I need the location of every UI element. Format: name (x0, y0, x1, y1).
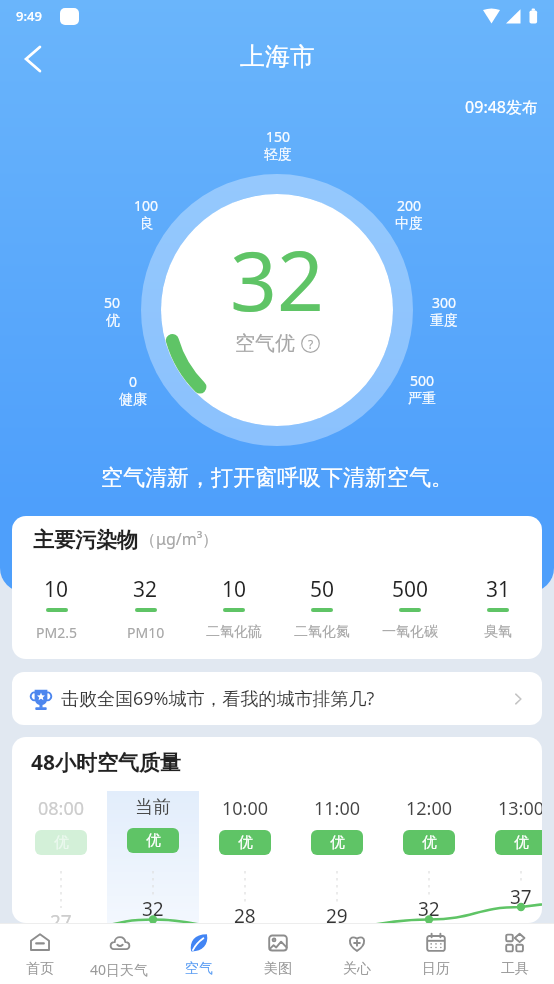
button[interactable]: 空气 (159, 924, 238, 984)
staticText: PM2.5 (36, 623, 77, 642)
staticText: 臭氧 (484, 623, 512, 641)
staticText: 08:00 (38, 796, 85, 821)
staticText: 10 (222, 575, 247, 604)
staticText: 一氧化碳 (382, 623, 438, 641)
staticText: 空气优 (235, 331, 295, 356)
staticText: 09:48发布 (0, 96, 538, 118)
staticText: 50 (104, 293, 121, 312)
staticText: 二氧化硫 (206, 623, 262, 641)
button[interactable]: 关心 (317, 924, 396, 984)
staticText: 500 (392, 575, 429, 604)
staticText: 50 (310, 575, 335, 604)
staticText: 主要污染物 (33, 527, 138, 553)
button[interactable]: 首页 (0, 924, 80, 984)
staticText: 优 (54, 833, 69, 852)
staticText: 500 (410, 371, 435, 390)
button[interactable]: 击败全国69%城市，看我的城市排第几? (12, 672, 542, 725)
staticText: 32 (230, 223, 324, 335)
staticText: （μg/m³） (140, 528, 219, 550)
staticText: 空气清新，打开窗呼吸下清新空气。 (0, 464, 554, 492)
staticText: PM10 (127, 623, 165, 642)
staticText: 31 (486, 575, 511, 604)
staticText: 优 (238, 833, 253, 852)
staticText: 空气 (185, 960, 213, 978)
staticText: 27 (50, 909, 72, 923)
staticText: 28 (234, 903, 256, 923)
staticText: 10:00 (222, 796, 269, 821)
staticText: 健康 (119, 391, 147, 406)
staticText: 中度 (395, 215, 423, 230)
staticText: 优 (106, 312, 120, 327)
staticText: 日历 (422, 960, 450, 978)
staticText: 11:00 (314, 796, 361, 821)
staticText: 29 (326, 903, 348, 923)
staticText: 优 (422, 833, 437, 852)
staticText: 良 (140, 215, 154, 230)
staticText: 100 (134, 196, 159, 215)
staticText: 200 (397, 196, 422, 215)
staticText: ? (308, 336, 314, 352)
staticText: 轻度 (264, 146, 292, 161)
staticText: 10 (44, 575, 69, 604)
button[interactable]: 日历 (396, 924, 475, 984)
staticText: 32 (142, 896, 164, 922)
staticText: 严重 (408, 390, 436, 405)
staticText: 优 (330, 833, 345, 852)
button[interactable]: 工具 (475, 924, 554, 984)
button[interactable]: 40日天气 (80, 924, 159, 984)
staticText: 48小时空气质量 (31, 748, 182, 777)
button[interactable]: Back (11, 37, 55, 81)
staticText: 300 (432, 293, 457, 312)
button[interactable]: 美图 (238, 924, 317, 984)
staticText: 优 (514, 833, 529, 852)
staticText: 优 (146, 831, 161, 850)
staticText: 重度 (430, 312, 458, 327)
staticText: 工具 (501, 960, 529, 978)
staticText: 击败全国69%城市，看我的城市排第几? (61, 686, 375, 711)
staticText: 关心 (343, 960, 371, 978)
staticText: 0 (129, 372, 138, 391)
staticText: 12:00 (406, 796, 453, 821)
staticText: 40日天气 (90, 960, 149, 979)
staticText: 37 (510, 884, 532, 910)
staticText: 32 (133, 575, 158, 604)
staticText: 150 (266, 127, 291, 146)
staticText: 上海市 (240, 41, 315, 72)
staticText: 当前 (135, 796, 171, 819)
staticText: 32 (418, 896, 440, 922)
staticText: 首页 (26, 960, 54, 978)
staticText: 13:00 (498, 796, 542, 821)
staticText: 9:49 (16, 7, 42, 25)
staticText: 美图 (264, 960, 292, 978)
staticText: 二氧化氮 (294, 623, 350, 641)
